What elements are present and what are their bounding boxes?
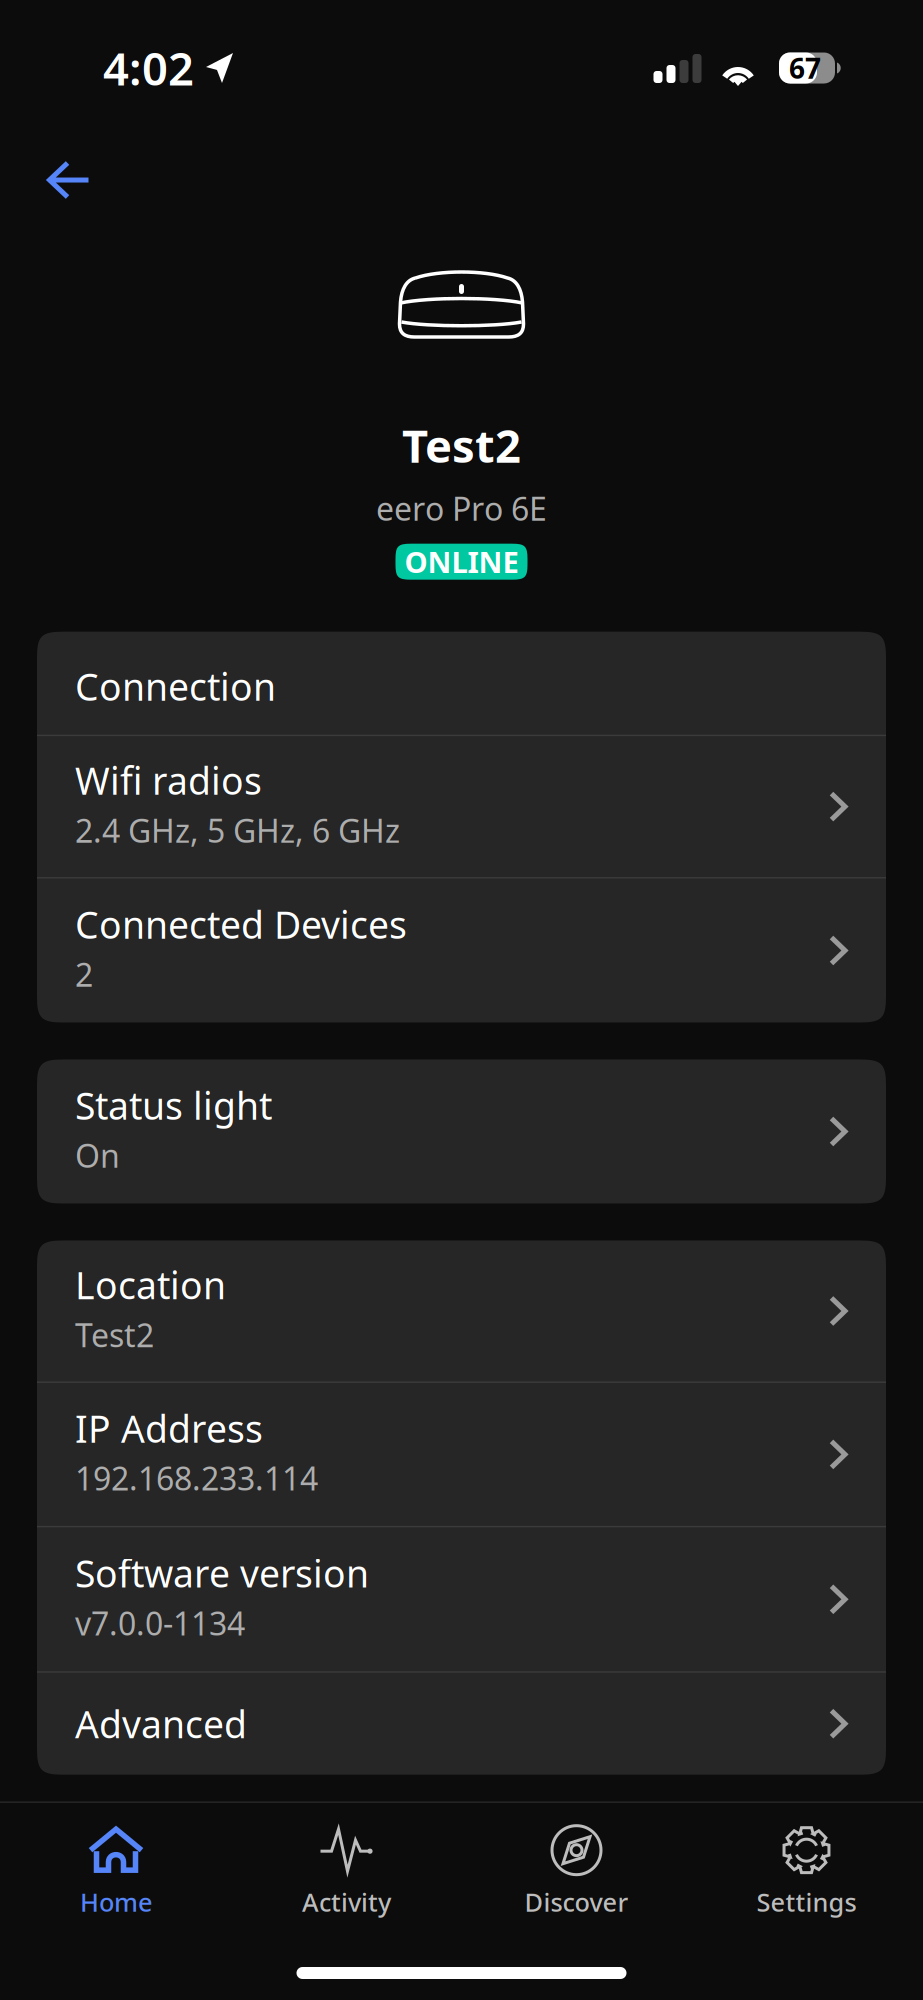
button[interactable]: Discover xyxy=(461,1817,691,1927)
button[interactable]: Software version xyxy=(37,1527,886,1671)
staticText: 2.4 GHz, 5 GHz, 6 GHz xyxy=(75,809,400,852)
staticText: Home xyxy=(80,1885,153,1919)
staticText: Software version xyxy=(75,1548,369,1598)
button[interactable]: Home xyxy=(1,1817,231,1927)
staticText: Discover xyxy=(524,1885,628,1919)
staticText: Activity xyxy=(302,1885,391,1919)
button[interactable]: Connected Devices xyxy=(37,878,886,1022)
button[interactable]: Wifi radios xyxy=(37,736,886,877)
staticText: Test2 xyxy=(402,415,521,475)
staticText: Connection xyxy=(75,661,276,711)
button[interactable]: Connection xyxy=(37,632,886,735)
button[interactable]: IP Address xyxy=(37,1383,886,1526)
button[interactable]: Advanced xyxy=(37,1673,886,1775)
staticText: Wifi radios xyxy=(75,756,262,805)
staticText: Status light xyxy=(75,1080,272,1130)
button[interactable]: Location xyxy=(37,1240,886,1381)
staticText: Connected Devices xyxy=(75,899,407,949)
staticText: On xyxy=(75,1134,120,1176)
staticText: IP Address xyxy=(75,1403,263,1453)
button[interactable]: Back xyxy=(25,136,113,224)
staticText: 4:02 xyxy=(103,38,194,98)
button[interactable]: Settings xyxy=(691,1817,921,1927)
staticText: Location xyxy=(75,1260,226,1310)
staticText: 192.168.233.114 xyxy=(75,1457,318,1499)
staticText: Advanced xyxy=(75,1699,247,1748)
staticText: 2 xyxy=(75,953,93,995)
button[interactable]: Status light xyxy=(37,1059,886,1203)
staticText: Test2 xyxy=(75,1313,154,1356)
staticText: v7.0.0-1134 xyxy=(75,1602,245,1644)
staticText: Settings xyxy=(756,1885,856,1919)
staticText: eero Pro 6E xyxy=(376,487,547,530)
button[interactable]: Activity xyxy=(231,1817,461,1927)
staticText: ONLINE xyxy=(404,542,518,581)
staticText: 67 xyxy=(789,49,821,87)
